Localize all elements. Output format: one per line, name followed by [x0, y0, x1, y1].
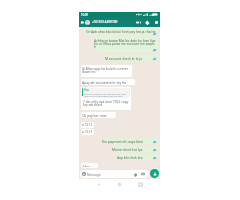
- button[interactable]: Maine check kar lya: [111, 146, 157, 152]
- button[interactable]: Home: [115, 180, 124, 189]
- button[interactable]: More options: [155, 20, 157, 25]
- button[interactable]: Back: [80, 20, 84, 24]
- button[interactable]: Camera: [141, 172, 145, 176]
- staticText: Achha ye batao Mai kis date ko loan liya…: [94, 38, 156, 49]
- staticText: 4 km: [82, 164, 90, 167]
- staticText: Apay ahi wo baskin kr diy ha: [82, 80, 126, 84]
- button[interactable]: M account check kr lo jo: [104, 55, 157, 61]
- staticText: 10:13: [85, 130, 93, 134]
- staticText: 10:13: [85, 123, 93, 127]
- button[interactable]: Achha ye batao Mai kis date ko loan liya…: [93, 37, 157, 52]
- button[interactable]: Apay ahi wo baskin kr diy ha: [81, 79, 135, 85]
- button[interactable]: Koi payment nhi aaya bhai: [101, 138, 157, 144]
- staticText: You: [84, 88, 89, 92]
- button[interactable]: You: [81, 87, 131, 110]
- button[interactable]: Recents: [136, 180, 145, 189]
- button[interactable]: Jb Main app ko bula hu server down ho: [81, 65, 132, 77]
- button[interactable]: Message: [80, 170, 149, 178]
- staticText: 7 din phly aya loan 7022 copy kry wo tha…: [83, 99, 129, 107]
- staticText: 10:09: [81, 13, 88, 17]
- staticText: +92 333 4490150: [92, 20, 118, 24]
- button[interactable]: 10:13: [81, 129, 94, 135]
- staticText: Ok pay kar now: [82, 113, 106, 117]
- staticText: Aap bhi chek kro: [117, 155, 143, 159]
- button[interactable]: Record voice message: [150, 169, 159, 178]
- button[interactable]: Video call: [135, 19, 141, 25]
- staticText: M account check kr lo jo: [105, 56, 143, 60]
- staticText: Koi payment nhi aaya bhai: [102, 139, 143, 143]
- button[interactable]: Sir Apb ahta bta do koi hein pay kra ja …: [85, 28, 157, 36]
- button[interactable]: 4 km: [81, 163, 98, 168]
- button[interactable]: Ok pay kar now: [81, 112, 116, 118]
- staticText: Maine check kar lya: [112, 147, 143, 151]
- button[interactable]: 10:13: [81, 122, 94, 128]
- staticText: Sir Apb ahta bta do koi hein pay kra ja …: [86, 29, 156, 33]
- button[interactable]: Attach: [133, 172, 137, 176]
- button[interactable]: Back: [94, 180, 103, 189]
- button[interactable]: Aap bhi chek kro: [116, 154, 157, 160]
- staticText: Jb Main app ko bula hu server down ho: [82, 66, 131, 74]
- button[interactable]: Call: [145, 20, 150, 25]
- staticText: Message: [87, 172, 101, 176]
- staticText: Achha ye batao Mai kis date ko loan liya…: [84, 92, 129, 98]
